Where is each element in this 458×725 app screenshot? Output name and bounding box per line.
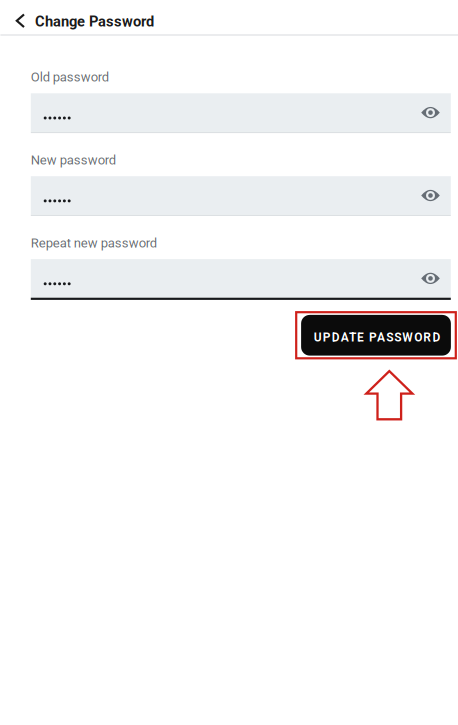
staticText: New password [31, 152, 116, 168]
staticText: Old password [31, 69, 109, 85]
staticText: Repeat new password [31, 235, 157, 251]
staticText: UPDATE PASSWORD [314, 330, 440, 344]
button[interactable]: Change Password [0, 0, 154, 34]
button[interactable]: Repeat new password [31, 259, 410, 298]
button[interactable]: Show Repeat new password [410, 259, 451, 298]
button[interactable]: Show New password [410, 176, 451, 215]
staticText: Change Password [35, 13, 154, 30]
button[interactable]: Show Old password [410, 93, 451, 132]
button[interactable]: Old password [31, 93, 410, 132]
button[interactable]: New password [31, 176, 410, 215]
button[interactable]: UPDATE PASSWORD [301, 315, 451, 356]
